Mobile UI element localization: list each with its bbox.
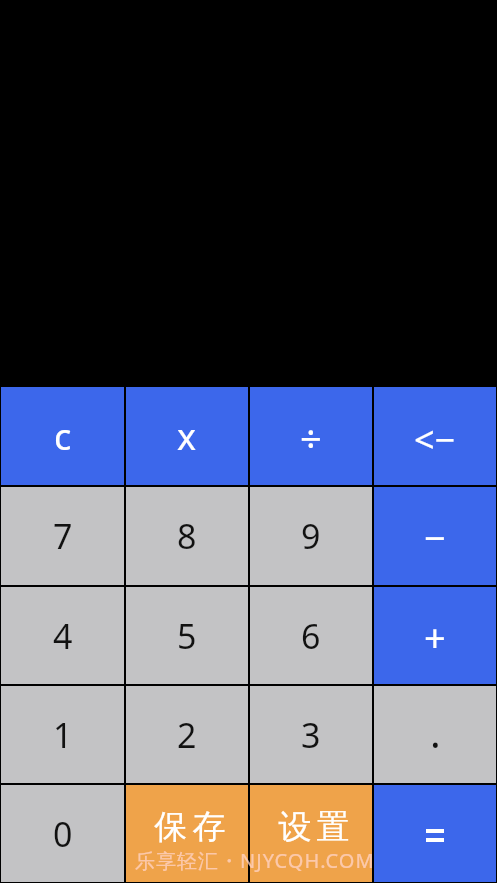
button[interactable]: 4 — [1, 587, 124, 684]
staticText: 7 — [53, 513, 73, 559]
staticText: 乐享轻汇・NJYCQH.COM — [135, 847, 375, 874]
button[interactable]: 0 — [1, 785, 124, 882]
button[interactable]: + — [374, 587, 496, 684]
staticText: 2 — [177, 712, 197, 758]
button[interactable]: − — [374, 487, 496, 585]
staticText: 设置 — [276, 806, 352, 848]
staticText: . — [430, 705, 441, 759]
button[interactable]: 设置 — [250, 785, 372, 882]
staticText: c — [54, 412, 72, 461]
staticText: 1 — [53, 712, 73, 758]
staticText: 4 — [53, 613, 73, 659]
button[interactable]: 9 — [250, 487, 372, 585]
button[interactable]: 5 — [126, 587, 248, 684]
button[interactable]: 保存 — [126, 785, 248, 882]
staticText: <− — [414, 415, 456, 464]
staticText: 5 — [177, 613, 197, 659]
button[interactable]: . — [374, 686, 496, 783]
button[interactable]: 2 — [126, 686, 248, 783]
button[interactable]: 8 — [126, 487, 248, 585]
staticText: x — [177, 412, 197, 461]
staticText: ÷ — [300, 412, 322, 464]
button[interactable]: 1 — [1, 686, 124, 783]
button[interactable] — [374, 785, 496, 882]
button[interactable]: <− — [374, 387, 496, 485]
button[interactable]: 6 — [250, 587, 372, 684]
button[interactable]: 7 — [1, 487, 124, 585]
staticText: 9 — [301, 513, 321, 559]
staticText: + — [424, 611, 446, 663]
staticText: 保存 — [152, 806, 228, 848]
staticText: 6 — [301, 613, 321, 659]
button[interactable]: 3 — [250, 686, 372, 783]
button[interactable]: ÷ — [250, 387, 372, 485]
staticText: 3 — [301, 712, 321, 758]
staticText: 8 — [177, 513, 197, 559]
button[interactable]: x — [126, 387, 248, 485]
staticText: 0 — [53, 811, 73, 857]
button[interactable]: c — [1, 387, 124, 485]
staticText: − — [424, 511, 446, 563]
